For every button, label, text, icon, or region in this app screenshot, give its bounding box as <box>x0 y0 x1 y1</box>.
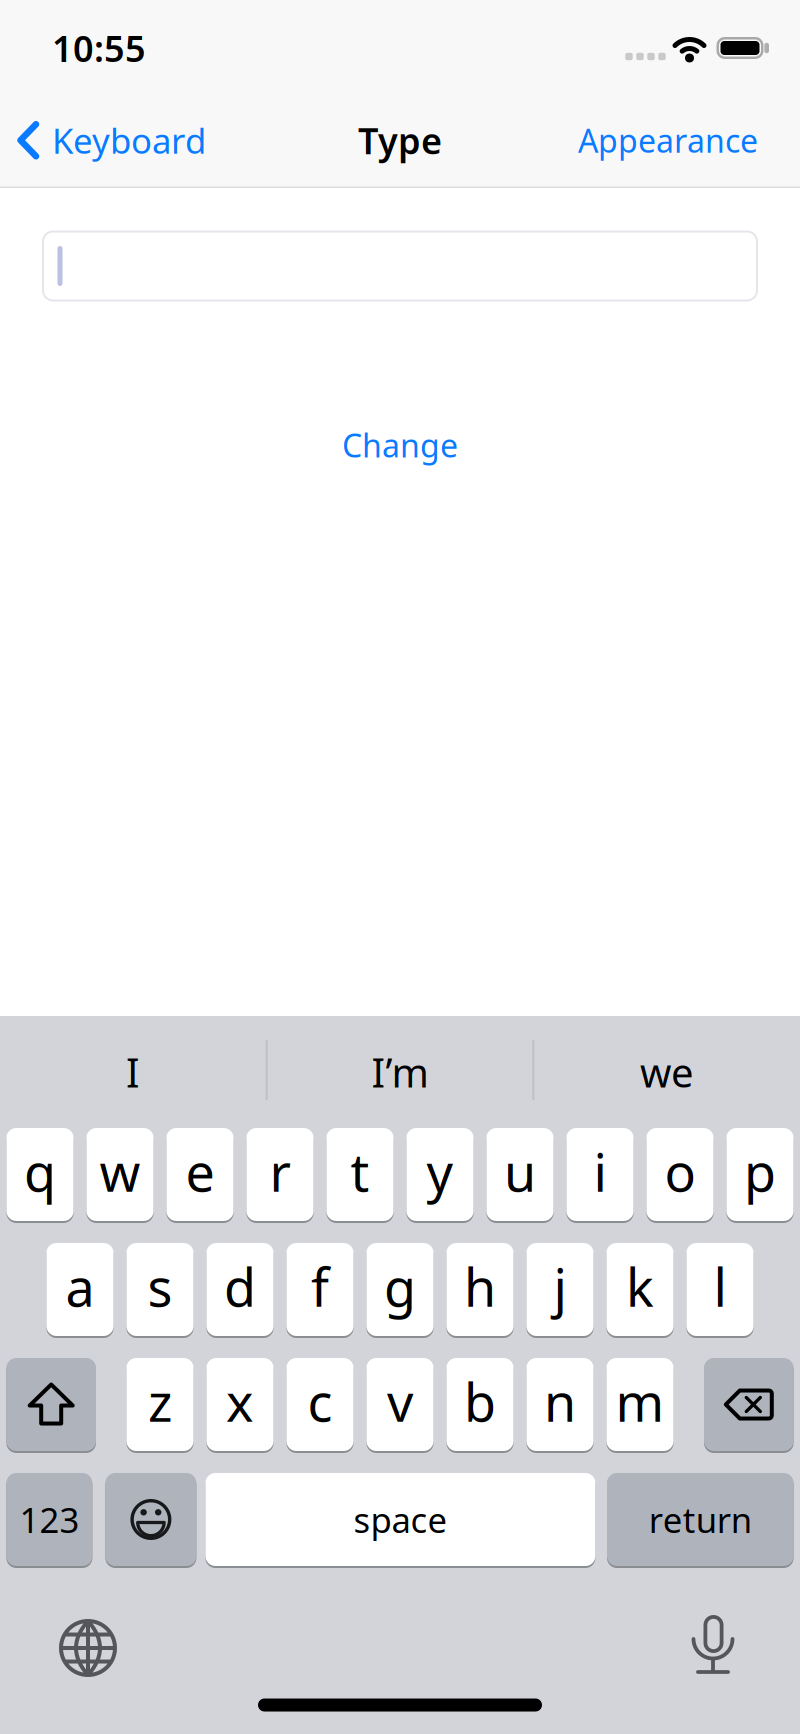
staticText: j <box>553 1252 566 1321</box>
button[interactable]: Emoji <box>105 1473 196 1566</box>
staticText: c <box>307 1367 332 1436</box>
staticText: y <box>426 1137 453 1206</box>
staticText: i <box>593 1137 606 1206</box>
button[interactable]: n <box>526 1358 594 1451</box>
button[interactable]: d <box>206 1243 274 1336</box>
button[interactable]: a <box>46 1243 114 1336</box>
button[interactable]: z <box>126 1358 194 1451</box>
staticText: return <box>649 1496 752 1542</box>
staticText: a <box>65 1252 94 1321</box>
staticText: f <box>311 1252 329 1321</box>
button[interactable]: Change <box>342 424 458 466</box>
staticText: o <box>664 1137 695 1206</box>
button[interactable]: 123 <box>6 1473 92 1566</box>
button[interactable]: j <box>526 1243 594 1336</box>
staticText: l <box>713 1252 726 1321</box>
staticText: b <box>464 1367 496 1436</box>
staticText: p <box>744 1137 776 1206</box>
staticText: n <box>544 1367 576 1436</box>
button[interactable]: l <box>686 1243 754 1336</box>
button[interactable]: I <box>3 1027 263 1117</box>
staticText: r <box>269 1137 290 1206</box>
staticText: w <box>99 1137 140 1206</box>
button[interactable]: Shift <box>6 1358 96 1451</box>
staticText: e <box>185 1137 214 1206</box>
staticText: space <box>353 1496 447 1542</box>
staticText: 10:55 <box>52 24 146 72</box>
button[interactable]: v <box>366 1358 434 1451</box>
staticText: Keyboard <box>52 117 206 163</box>
button[interactable]: Text field <box>42 230 758 301</box>
button[interactable]: Next keyboard <box>59 1619 117 1677</box>
button[interactable]: Delete <box>704 1358 794 1451</box>
button[interactable]: q <box>6 1128 74 1221</box>
button[interactable]: Dictation <box>691 1615 735 1675</box>
staticText: v <box>387 1367 413 1436</box>
staticText: g <box>384 1252 416 1321</box>
button[interactable]: e <box>166 1128 234 1221</box>
button[interactable]: m <box>606 1358 674 1451</box>
staticText: m <box>615 1367 664 1436</box>
button[interactable]: Keyboard <box>17 117 206 163</box>
button[interactable]: r <box>246 1128 314 1221</box>
button[interactable]: h <box>446 1243 514 1336</box>
staticText: Change <box>342 424 458 466</box>
staticText: Appearance <box>578 119 758 161</box>
button[interactable]: k <box>606 1243 674 1336</box>
button[interactable]: space <box>205 1473 595 1566</box>
button[interactable]: i <box>566 1128 634 1221</box>
button[interactable]: w <box>86 1128 154 1221</box>
button[interactable]: we <box>537 1027 797 1117</box>
button[interactable]: y <box>406 1128 474 1221</box>
button[interactable]: Appearance <box>578 119 758 161</box>
staticText: s <box>147 1252 172 1321</box>
staticText: I <box>126 1045 140 1098</box>
staticText: d <box>224 1252 256 1321</box>
staticText: z <box>148 1367 172 1436</box>
button[interactable]: o <box>646 1128 714 1221</box>
button[interactable]: u <box>486 1128 554 1221</box>
staticText: x <box>226 1367 254 1436</box>
button[interactable]: p <box>726 1128 794 1221</box>
staticText: t <box>350 1137 369 1206</box>
button[interactable]: I’m <box>270 1027 530 1117</box>
staticText: k <box>626 1252 654 1321</box>
button[interactable]: s <box>126 1243 194 1336</box>
staticText: 123 <box>19 1496 79 1542</box>
staticText: q <box>24 1137 56 1206</box>
staticText: I’m <box>371 1045 428 1098</box>
button[interactable]: x <box>206 1358 274 1451</box>
button[interactable]: b <box>446 1358 514 1451</box>
button[interactable]: return <box>607 1473 794 1566</box>
staticText: we <box>640 1045 694 1098</box>
staticText: Type <box>358 116 442 164</box>
button[interactable]: g <box>366 1243 434 1336</box>
button[interactable]: f <box>286 1243 354 1336</box>
button[interactable]: t <box>326 1128 394 1221</box>
staticText: u <box>504 1137 536 1206</box>
button[interactable]: c <box>286 1358 354 1451</box>
staticText: h <box>464 1252 496 1321</box>
